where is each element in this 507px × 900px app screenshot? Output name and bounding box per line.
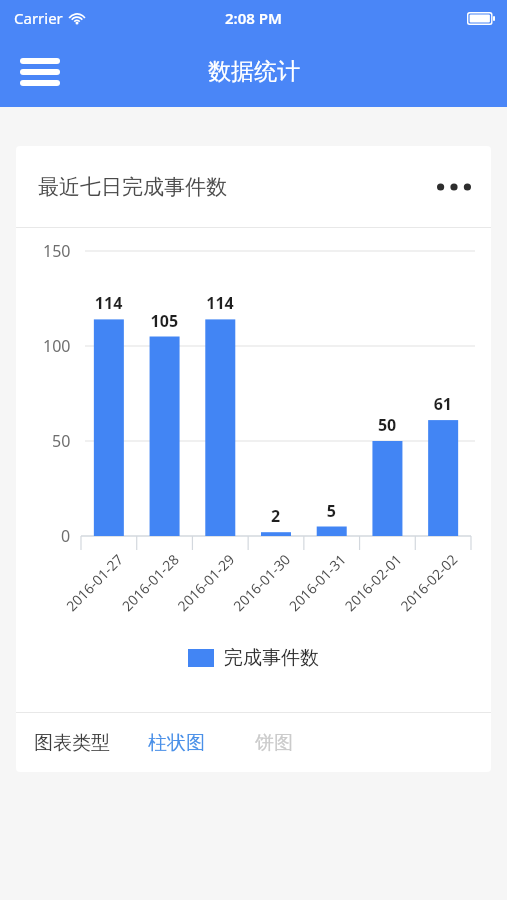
staticText: 饼图 xyxy=(255,731,293,755)
staticText: 2:08 PM xyxy=(225,8,282,28)
staticText: 最近七日完成事件数 xyxy=(38,174,227,200)
button[interactable]: 柱状图 xyxy=(144,723,209,763)
button[interactable]: 最近七日完成事件数 xyxy=(16,146,491,227)
button[interactable]: Menu xyxy=(14,50,66,94)
staticText: 图表类型 xyxy=(34,731,110,755)
staticText: Carrier xyxy=(14,8,63,28)
staticText: 柱状图 xyxy=(148,731,205,755)
button[interactable]: More options xyxy=(431,165,477,209)
button[interactable]: 饼图 xyxy=(251,723,297,763)
staticText: 数据统计 xyxy=(208,57,300,86)
